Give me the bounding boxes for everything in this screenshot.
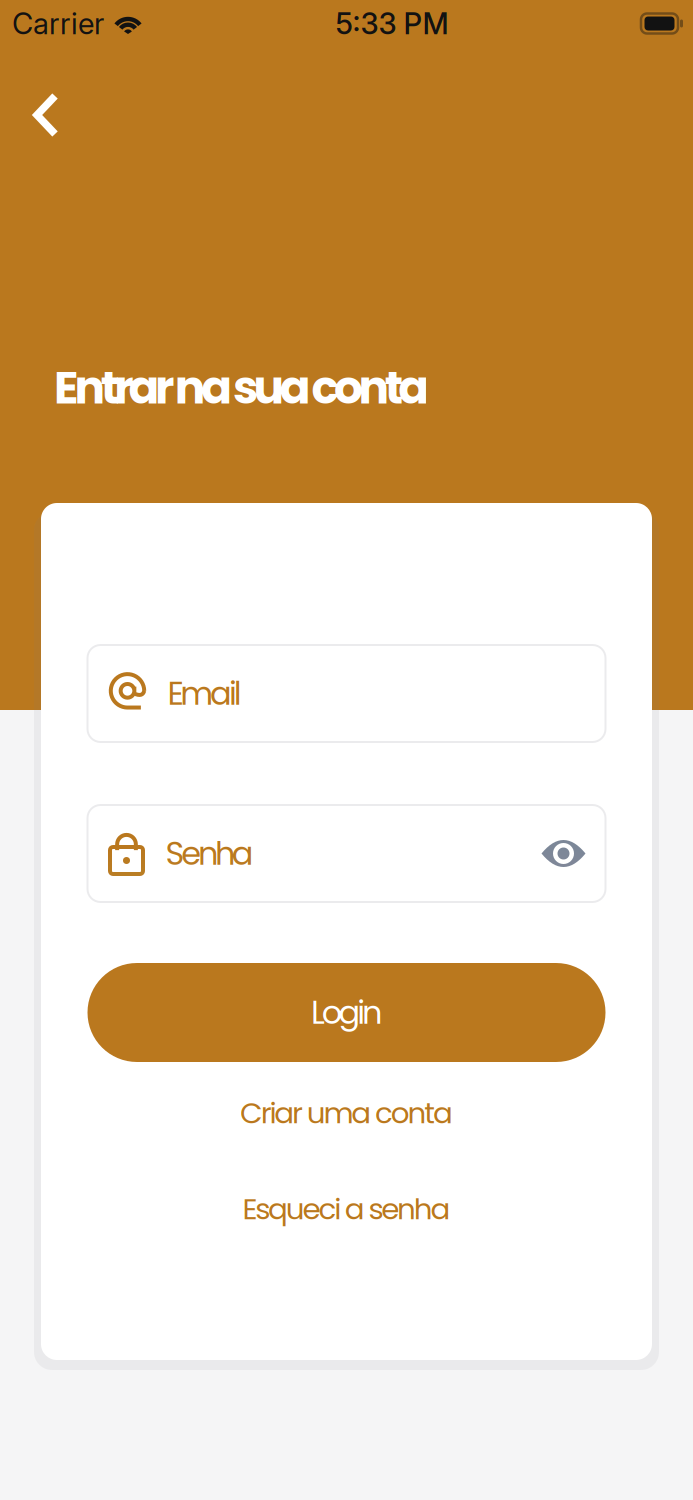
staticText: Esqueci a senha (242, 1188, 451, 1230)
staticText: Senha (165, 831, 254, 876)
staticText: Carrier (12, 6, 104, 41)
staticText: Login (311, 990, 382, 1035)
button[interactable]: Login (87, 963, 605, 1062)
button[interactable]: Esqueci a senha (87, 1174, 605, 1244)
staticText: Criar uma conta (240, 1092, 453, 1134)
staticText: Entrar na sua conta (54, 356, 429, 419)
button[interactable]: Criar uma conta (87, 1078, 605, 1148)
staticText: 5:33 PM (335, 6, 448, 41)
staticText: Email (167, 671, 242, 716)
button[interactable]: Back (0, 78, 79, 152)
button[interactable]: Show password (539, 833, 587, 873)
